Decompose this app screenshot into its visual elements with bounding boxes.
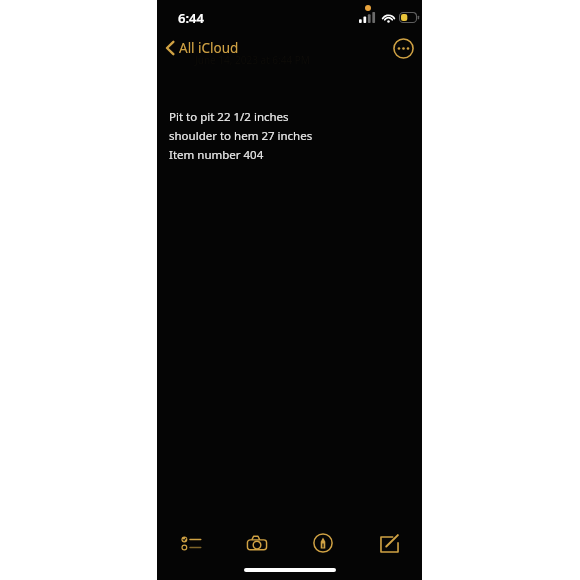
staticText: 6:44: [178, 9, 204, 27]
staticText: All iCloud: [179, 39, 239, 57]
button[interactable]: New note: [356, 527, 422, 559]
staticText: Pit to pit 22 1/2 inches: [169, 109, 289, 125]
staticText: Item number 404: [169, 147, 264, 163]
staticText: shoulder to hem 27 inches: [169, 128, 313, 144]
button[interactable]: More options: [389, 34, 417, 62]
button[interactable]: Camera: [224, 527, 290, 559]
button[interactable]: All iCloud: [162, 36, 243, 60]
button[interactable]: Checklist: [157, 527, 224, 559]
button[interactable]: Markup: [290, 527, 356, 559]
